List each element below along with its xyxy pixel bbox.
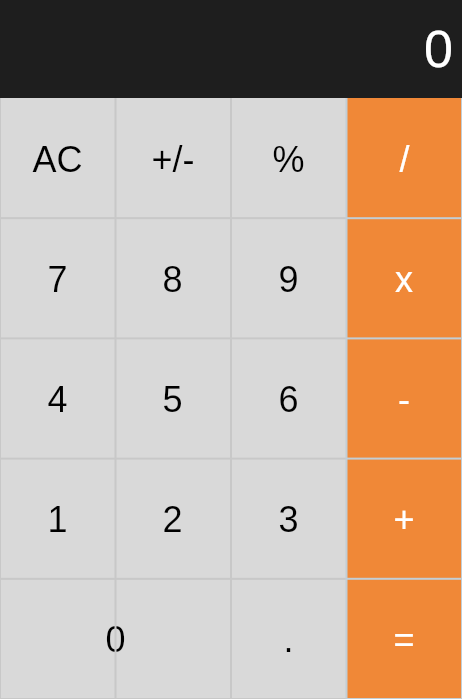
button[interactable]: 1 (0, 459, 115, 579)
button[interactable]: = (346, 579, 462, 699)
staticText: % (272, 139, 305, 179)
button[interactable]: 6 (230, 339, 346, 459)
button[interactable]: AC (0, 98, 115, 219)
staticText: / (399, 139, 410, 179)
button[interactable]: 9 (230, 219, 346, 339)
staticText: = (393, 619, 415, 659)
staticText: +/- (151, 139, 195, 179)
staticText: 1 (47, 499, 68, 539)
button[interactable]: - (346, 339, 462, 459)
staticText: 8 (162, 259, 183, 299)
staticText: AC (32, 139, 83, 179)
button[interactable]: 2 (115, 459, 230, 579)
staticText: x (395, 259, 413, 299)
staticText: 2 (162, 499, 183, 539)
staticText: 4 (47, 379, 68, 419)
button[interactable]: 7 (0, 219, 115, 339)
button[interactable]: 4 (0, 339, 115, 459)
button[interactable]: 0 (0, 579, 230, 699)
button[interactable]: 3 (230, 459, 346, 579)
button[interactable]: +/- (115, 98, 230, 219)
staticText: - (398, 379, 410, 419)
staticText: 9 (278, 259, 299, 299)
staticText: 5 (162, 379, 183, 419)
button[interactable]: / (346, 98, 462, 219)
button[interactable]: 8 (115, 219, 230, 339)
button[interactable]: 5 (115, 339, 230, 459)
staticText: 6 (278, 379, 299, 419)
button[interactable]: x (346, 219, 462, 339)
staticText: + (393, 499, 415, 539)
button[interactable]: . (230, 579, 346, 699)
staticText: 3 (278, 499, 299, 539)
button[interactable]: + (346, 459, 462, 579)
staticText: 0 (105, 619, 126, 659)
staticText: 7 (47, 259, 68, 299)
button[interactable]: % (230, 98, 346, 219)
staticText: . (283, 619, 294, 659)
staticText: 0 (424, 20, 453, 78)
